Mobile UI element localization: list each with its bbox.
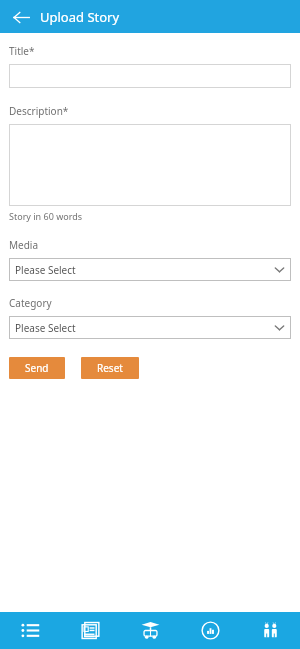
button[interactable] [9,124,291,206]
staticText: Send [25,361,49,375]
button[interactable]: News [60,612,120,649]
button[interactable]: Education [120,612,180,649]
staticText: Story in 60 words [9,210,83,222]
staticText: Upload Story [40,8,120,26]
button[interactable]: Please Select [9,316,291,339]
staticText: Please Select [15,263,274,277]
staticText: Please Select [15,321,274,335]
button[interactable] [9,64,291,88]
button[interactable]: Back [8,4,34,30]
staticText: Description* [9,104,69,118]
staticText: Title* [9,44,35,58]
staticText: Reset [97,361,123,375]
button[interactable]: Reset [81,357,139,379]
button[interactable]: Send [9,357,65,379]
button[interactable]: People [240,612,300,649]
staticText: Media [9,238,39,252]
button[interactable]: Please Select [9,258,291,281]
button[interactable]: Reports [180,612,240,649]
button[interactable]: List [0,612,60,649]
staticText: Category [9,296,52,310]
